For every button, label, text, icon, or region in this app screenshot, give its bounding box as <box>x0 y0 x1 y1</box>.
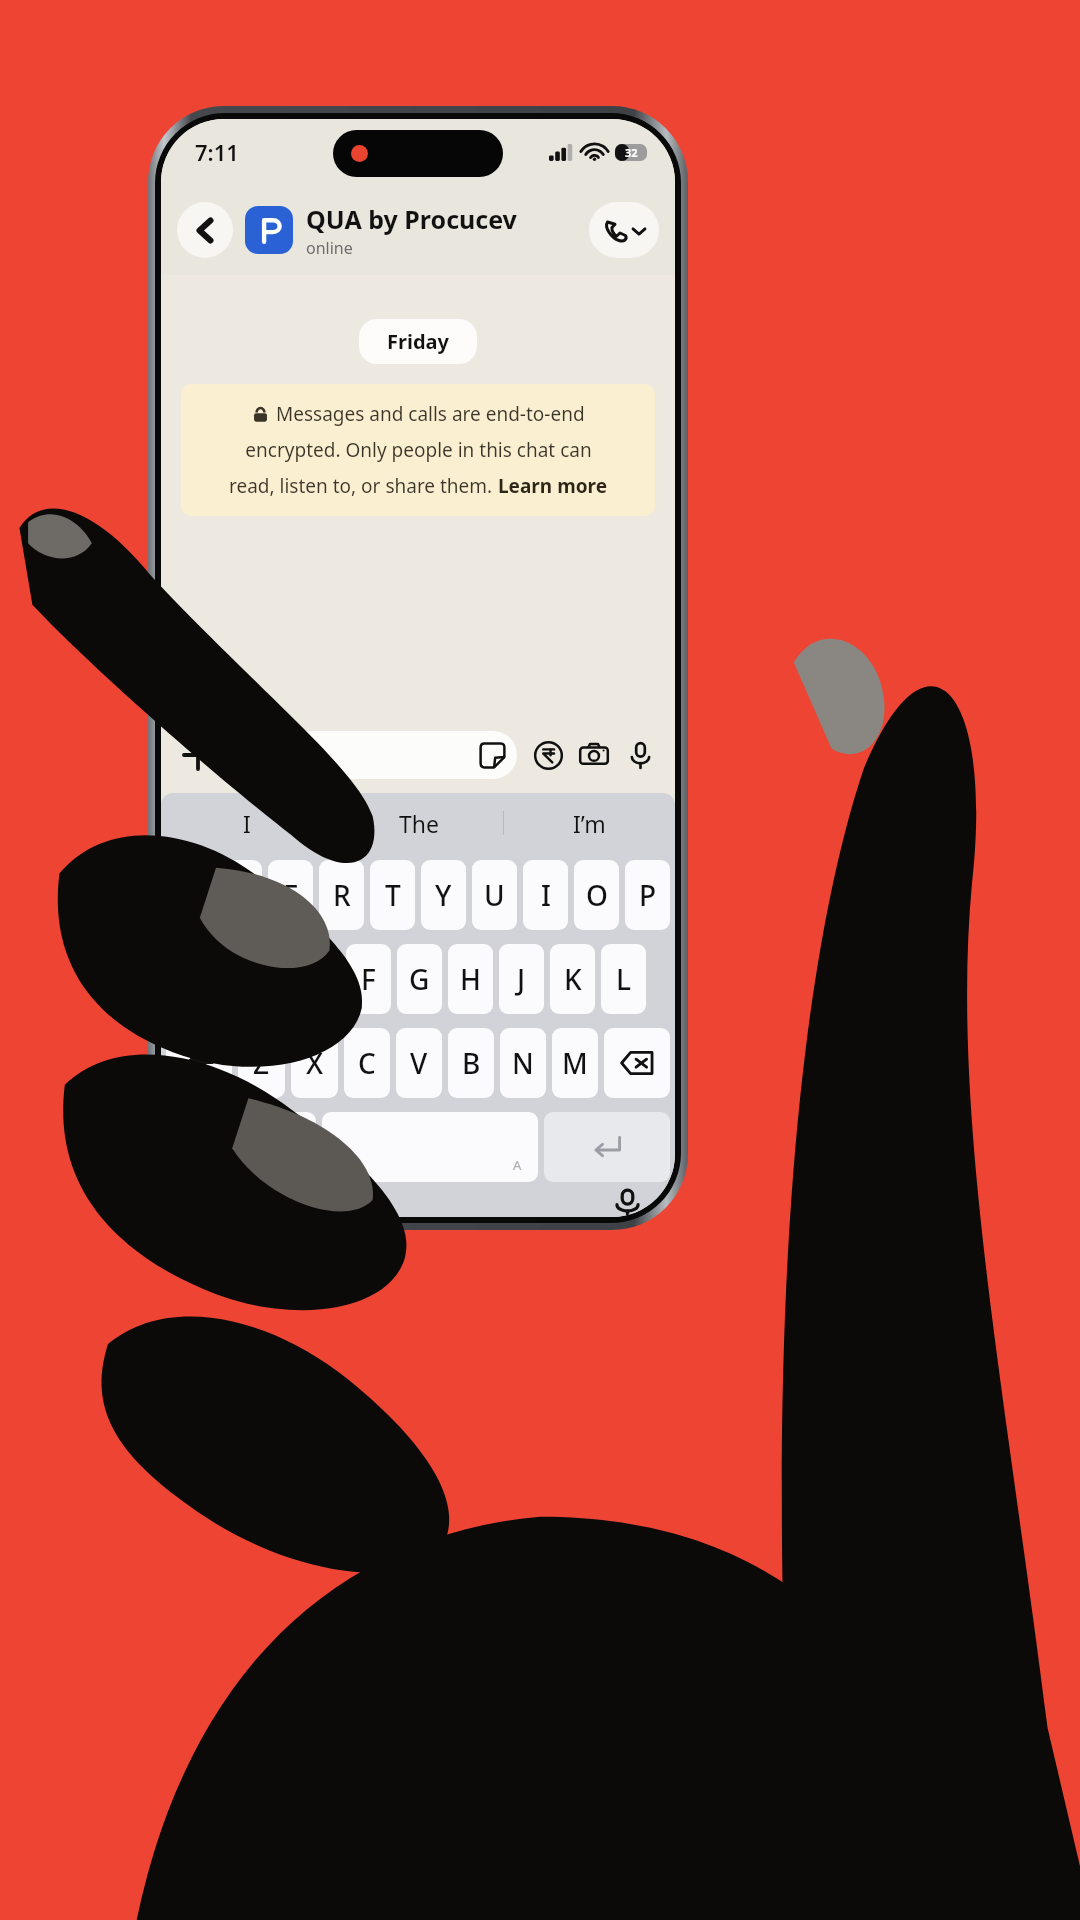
staticText: D <box>307 960 328 998</box>
staticText: B <box>462 1044 481 1082</box>
staticText: K <box>564 960 582 998</box>
staticText: J <box>517 960 526 998</box>
staticText: F <box>361 960 376 998</box>
button[interactable]: Camera <box>573 734 615 776</box>
button[interactable]: A <box>190 944 236 1014</box>
button[interactable]: U <box>472 860 517 930</box>
staticText: H <box>460 960 481 998</box>
staticText: E <box>283 876 299 914</box>
button[interactable]: Payment <box>527 734 569 776</box>
button[interactable]: I <box>523 860 568 930</box>
staticText: L <box>616 960 631 998</box>
button[interactable]: X <box>291 1028 338 1098</box>
staticText: T <box>385 876 401 914</box>
button[interactable]: L <box>601 944 646 1014</box>
staticText: A <box>513 1156 522 1174</box>
button[interactable]: Backspace <box>604 1028 670 1098</box>
button[interactable]: Emoji <box>248 1112 316 1182</box>
button[interactable]: I <box>161 793 333 853</box>
button[interactable]: F <box>346 944 391 1014</box>
button[interactable]: Y <box>421 860 466 930</box>
staticText: The <box>399 808 439 839</box>
button[interactable]: The <box>333 793 504 853</box>
staticText: Learn more <box>498 473 607 499</box>
button[interactable]: C <box>344 1028 390 1098</box>
button[interactable]: Shift <box>166 1028 232 1098</box>
button[interactable]: E <box>268 860 313 930</box>
button[interactable]: T <box>370 860 415 930</box>
staticText: X <box>306 1044 324 1082</box>
button[interactable]: D <box>294 944 340 1014</box>
staticText: N <box>512 1044 534 1082</box>
button[interactable]: 123 <box>166 1112 242 1182</box>
button[interactable]: J <box>499 944 544 1014</box>
button[interactable]: G <box>397 944 442 1014</box>
button[interactable]: Messages and calls are end-to-end <box>181 384 655 516</box>
button[interactable]: H <box>448 944 493 1014</box>
button[interactable]: QUA by Procucev <box>306 202 589 259</box>
button[interactable]: I’m <box>504 793 675 853</box>
staticText: 7:11 <box>195 137 239 167</box>
button[interactable]: Voice message <box>619 734 661 776</box>
button[interactable]: Back <box>177 202 233 258</box>
staticText: I <box>243 808 251 839</box>
staticText: Messages and calls are end-to-end <box>276 401 585 427</box>
staticText: U <box>484 876 505 914</box>
button[interactable]: P <box>625 860 670 930</box>
staticText: P <box>639 876 657 914</box>
staticText: Friday <box>387 328 449 355</box>
button[interactable]: Attach <box>175 732 221 778</box>
staticText: G <box>409 960 430 998</box>
button[interactable]: K <box>550 944 595 1014</box>
staticText: R <box>333 876 351 914</box>
staticText: Z <box>253 1044 270 1082</box>
button[interactable]: Return <box>544 1112 670 1182</box>
button[interactable]: Q <box>166 860 211 930</box>
button[interactable]: Call <box>589 202 659 258</box>
staticText: C <box>358 1044 376 1082</box>
button[interactable]: Friday <box>359 319 477 364</box>
staticText: I <box>541 876 551 914</box>
staticText: read, listen to, or share them. <box>229 473 498 499</box>
button[interactable]: B <box>448 1028 494 1098</box>
button[interactable]: O <box>574 860 619 930</box>
staticText: M <box>562 1044 588 1082</box>
staticText: V <box>410 1044 428 1082</box>
button[interactable]: M <box>552 1028 598 1098</box>
button[interactable] <box>227 731 517 779</box>
staticText: O <box>586 876 608 914</box>
staticText: S <box>257 960 273 998</box>
button[interactable]: Dictation <box>603 1189 651 1217</box>
button[interactable]: R <box>319 860 364 930</box>
staticText: encrypted. Only people in this chat can <box>245 437 592 463</box>
staticText: Y <box>435 876 452 914</box>
button[interactable]: V <box>396 1028 442 1098</box>
button[interactable]: Z <box>238 1028 285 1098</box>
button[interactable]: N <box>500 1028 546 1098</box>
button[interactable]: W <box>217 860 262 930</box>
button[interactable]: S <box>242 944 288 1014</box>
staticText: QUA by Procucev <box>306 202 517 236</box>
staticText: I’m <box>573 808 606 839</box>
staticText: 32 <box>625 145 638 160</box>
staticText: online <box>306 237 353 259</box>
button[interactable]: A <box>322 1112 538 1182</box>
